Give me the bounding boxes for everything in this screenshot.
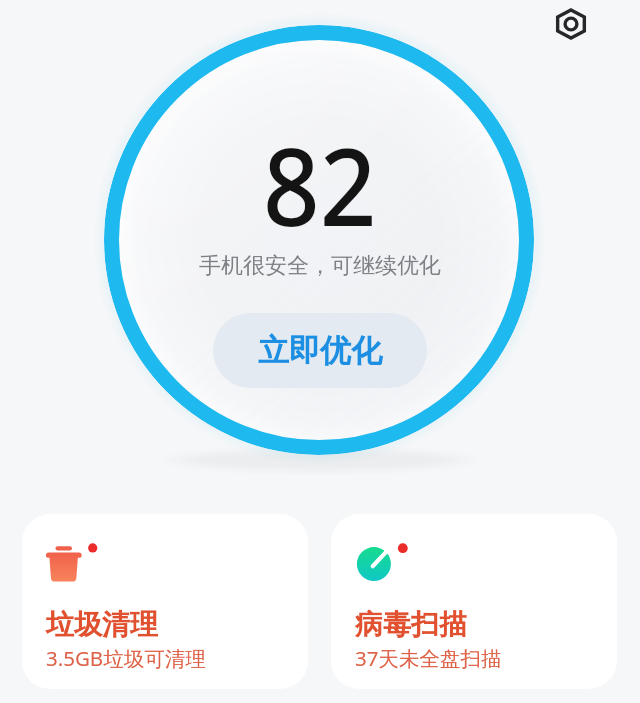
- button[interactable]: 垃圾清理: [22, 514, 308, 689]
- button[interactable]: Settings: [549, 2, 593, 46]
- staticText: 垃圾清理: [46, 607, 158, 642]
- staticText: 立即优化: [258, 331, 382, 370]
- staticText: 3.5GB垃圾可清理: [46, 644, 206, 672]
- staticText: 37天未全盘扫描: [355, 644, 502, 672]
- button[interactable]: Security score 82: [104, 25, 534, 455]
- button[interactable]: 立即优化: [213, 313, 427, 388]
- staticText: 82: [263, 112, 377, 258]
- staticText: 手机很安全，可继续优化: [199, 252, 441, 280]
- button[interactable]: 病毒扫描: [331, 514, 617, 689]
- staticText: 病毒扫描: [355, 607, 467, 642]
